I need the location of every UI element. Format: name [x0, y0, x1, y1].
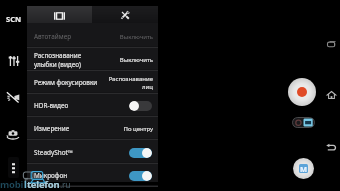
button[interactable]: SCN: [3, 12, 24, 26]
staticText: Микрофон: [34, 171, 129, 180]
staticText: Измерение: [34, 124, 123, 133]
button[interactable]: Flash off: [4, 88, 22, 106]
staticText: Выключить: [119, 56, 153, 64]
staticText: telefon: [27, 178, 60, 191]
button[interactable]: Распознавание улыбки (видео): [27, 48, 158, 71]
button[interactable]: Автотаймер: [27, 25, 158, 48]
staticText: HDR-видео: [34, 101, 129, 110]
button[interactable]: Adjust settings: [5, 52, 23, 70]
staticText: l: [24, 178, 27, 191]
staticText: M: [300, 164, 308, 173]
button[interactable]: More options: [8, 157, 19, 178]
staticText: Распознавание лиц: [108, 75, 153, 91]
button[interactable]: Back: [324, 140, 338, 154]
button[interactable]: HDR-видео: [27, 94, 158, 117]
button[interactable]: Recents: [324, 37, 338, 51]
staticText: SteadyShot™: [34, 148, 129, 157]
button[interactable]: Home: [324, 88, 338, 102]
button[interactable]: Микрофон: [27, 164, 158, 187]
button[interactable]: Switch between photo and video mode: [292, 117, 315, 128]
staticText: mobi: [0, 178, 24, 191]
button[interactable]: Switch camera: [4, 125, 22, 143]
staticText: Режим фокусировки: [34, 78, 108, 87]
staticText: Выключить: [119, 33, 153, 41]
staticText: .ru: [60, 179, 71, 191]
button[interactable]: Режим фокусировки: [27, 71, 158, 94]
button[interactable]: Open gallery: [293, 158, 314, 179]
button[interactable]: Tools settings tab: [92, 6, 158, 23]
button[interactable]: SteadyShot™: [27, 141, 158, 164]
staticText: SCN: [6, 14, 22, 24]
button[interactable]: Record: [288, 78, 316, 106]
staticText: Распознавание улыбки (видео): [34, 51, 119, 68]
staticText: По центру: [123, 125, 153, 133]
button[interactable]: Video settings tab: [27, 6, 92, 23]
staticText: Автотаймер: [34, 32, 119, 41]
button[interactable]: Измерение: [27, 117, 158, 140]
